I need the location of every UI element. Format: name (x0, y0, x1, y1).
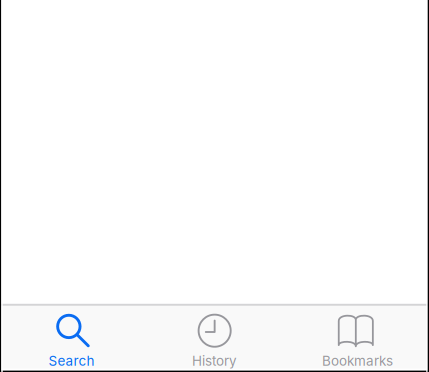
button[interactable]: Search (0, 306, 143, 372)
staticText: Search (48, 353, 94, 369)
staticText: History (192, 353, 237, 369)
button[interactable]: History (143, 306, 286, 372)
button[interactable]: Bookmarks (286, 306, 429, 372)
staticText: Bookmarks (322, 353, 393, 369)
